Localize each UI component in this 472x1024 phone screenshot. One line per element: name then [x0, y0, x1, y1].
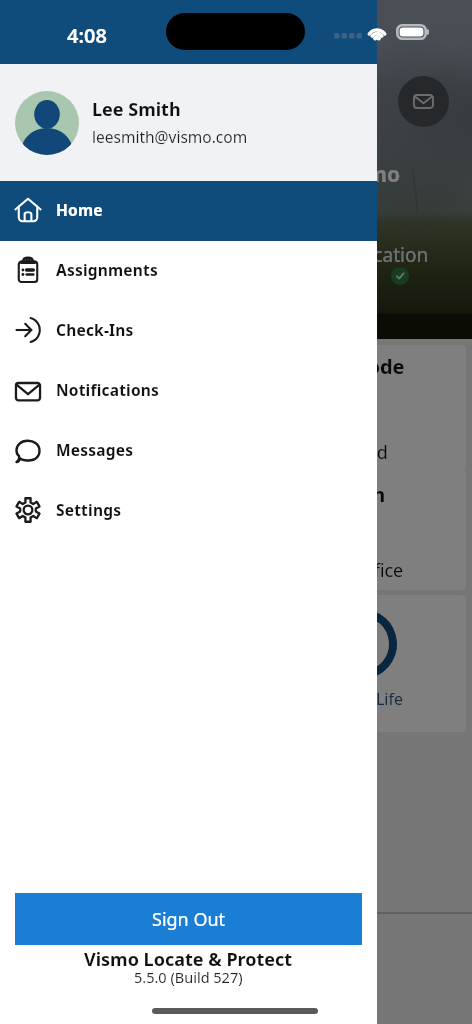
button[interactable]: Messages	[398, 76, 449, 127]
staticText: Messages	[56, 439, 134, 460]
staticText: Share Location	[296, 242, 429, 268]
staticText: Lee Smith	[92, 97, 181, 122]
staticText: Settings	[56, 499, 122, 520]
staticText: Battery Life	[317, 688, 403, 710]
staticText: Standard	[311, 440, 388, 465]
staticText: 5.5.0 (Build 527)	[134, 967, 243, 987]
staticText: Home	[56, 199, 103, 220]
staticText: Vismo	[336, 160, 401, 189]
button[interactable]: Notifications	[0, 361, 377, 421]
staticText: Vismo Locate & Protect	[84, 947, 293, 972]
button[interactable]: Lee Smith	[0, 64, 377, 181]
staticText: Location	[299, 481, 386, 508]
staticText: Check-Ins	[56, 319, 134, 340]
staticText: Sign Out	[152, 907, 226, 932]
staticText: 4:08	[67, 22, 107, 49]
staticText: Head Office	[304, 558, 404, 583]
staticText: Tracking Mode	[258, 353, 405, 380]
staticText: Notifications	[56, 379, 160, 400]
staticText: leesmith@vismo.com	[92, 126, 248, 147]
button[interactable]: Sign Out	[15, 893, 362, 945]
button[interactable]: Check-Ins	[0, 301, 377, 361]
button[interactable]: Assignments	[0, 241, 377, 301]
button[interactable]: Messages	[0, 421, 377, 481]
button[interactable]: Home	[0, 181, 377, 241]
button[interactable]: Settings	[0, 481, 377, 541]
staticText: Assignments	[56, 259, 158, 280]
